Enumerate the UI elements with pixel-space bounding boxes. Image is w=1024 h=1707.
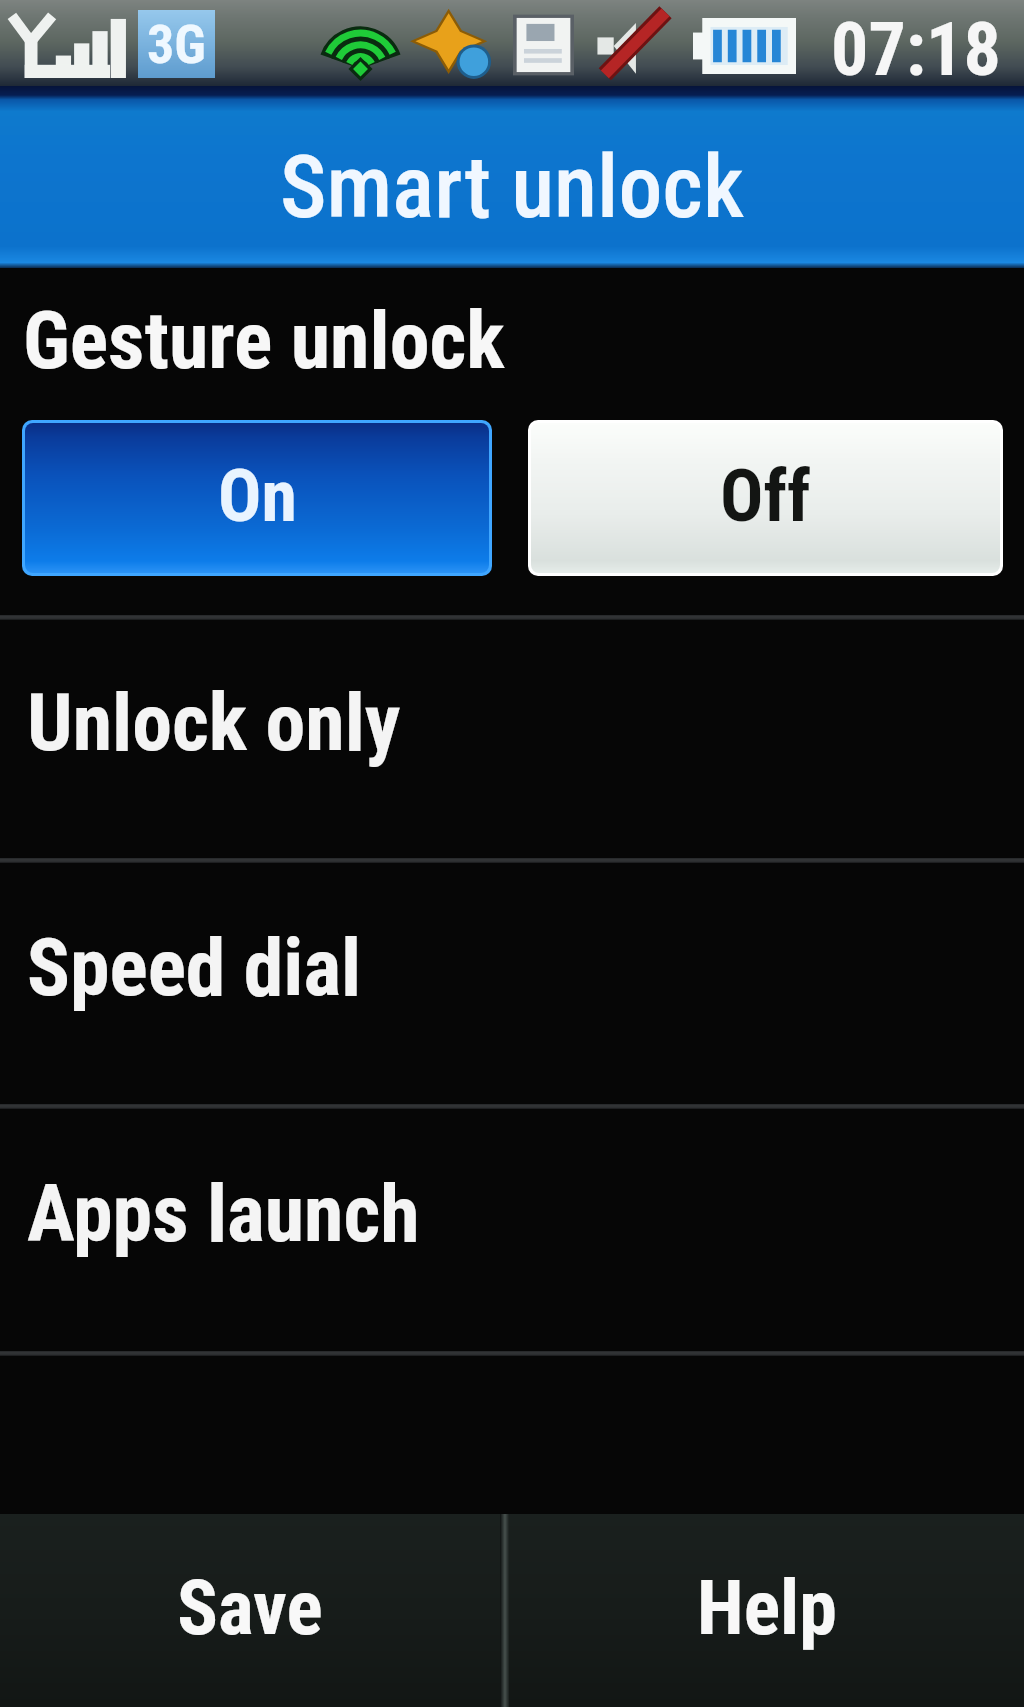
staticText: Off	[720, 454, 811, 538]
staticText: Gesture unlock	[23, 294, 505, 388]
other: Battery full	[693, 18, 796, 74]
button[interactable]: Off	[528, 420, 1003, 576]
button[interactable]: Unlock only	[0, 620, 1024, 858]
staticText: Speed dial	[27, 921, 362, 1015]
other: Silent mode	[593, 11, 667, 77]
staticText: Smart unlock	[280, 135, 744, 238]
staticText: Help	[697, 1563, 837, 1652]
other: Wi-Fi	[325, 11, 396, 80]
other: Memo	[513, 12, 574, 78]
button[interactable]: Help	[509, 1514, 1024, 1707]
button[interactable]: Speed dial	[0, 863, 1024, 1104]
other: Signal strength	[7, 12, 129, 78]
staticText: On	[218, 454, 297, 538]
button[interactable]: Apps launch	[0, 1109, 1024, 1351]
button[interactable]: Save	[0, 1514, 500, 1707]
staticText: Save	[177, 1563, 323, 1652]
staticText: Apps launch	[27, 1167, 420, 1261]
other: Alarm	[410, 10, 494, 78]
button[interactable]: On	[22, 420, 492, 576]
staticText: 3G	[147, 13, 206, 76]
other: 3G network	[138, 10, 215, 78]
staticText: 07:18	[831, 6, 1001, 92]
staticText: Unlock only	[27, 676, 401, 770]
